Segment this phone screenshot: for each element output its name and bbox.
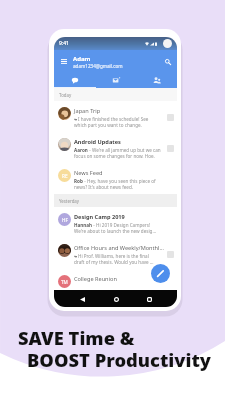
staticText: Today (59, 92, 72, 98)
staticText: Adam (73, 55, 91, 63)
button[interactable]: Japan Trip (54, 101, 177, 132)
staticText: Office Hours and Weekly/Monthly Me... (74, 244, 165, 252)
staticText: draft of my thesis. Would you have ... (74, 259, 154, 265)
staticText: HF (62, 217, 68, 223)
staticText: Hi 2019 Design Campers! (96, 222, 151, 228)
staticText: - (83, 178, 87, 184)
staticText: Android Updates (74, 138, 121, 146)
button[interactable]: TM (54, 269, 177, 290)
button[interactable]: Home (110, 293, 122, 305)
staticText: Design Camp 2019 (74, 213, 125, 221)
staticText: Hey, have you seen this piece of (87, 178, 156, 184)
staticText: - (92, 222, 96, 228)
staticText: focus on some changes for now. Hoe. (74, 153, 155, 159)
staticText: We're all jammed up but we can (92, 147, 161, 153)
staticText: RE (62, 173, 68, 179)
staticText: - (88, 147, 92, 153)
staticText: TM (61, 279, 68, 285)
button[interactable]: RE (54, 163, 177, 194)
button[interactable]: Chats (54, 73, 95, 88)
staticText: news? It's about news feed. (74, 184, 133, 190)
staticText: Japan Trip (74, 107, 101, 115)
staticText: Hannah (74, 222, 92, 228)
staticText: which part you want to change. (74, 122, 142, 128)
button[interactable]: Recent apps (143, 293, 155, 305)
button[interactable]: Android Updates (54, 132, 177, 163)
button[interactable]: Compose new message (151, 264, 170, 283)
button[interactable]: Contacts (136, 73, 177, 88)
staticText: Yesterday (59, 198, 80, 204)
staticText: College Reunion (74, 275, 117, 283)
button[interactable]: Office Hours and Weekly/Monthly Me... (54, 238, 177, 269)
button[interactable]: Open navigation menu (58, 56, 69, 67)
staticText: I have finished the schedule! See (78, 116, 149, 122)
button[interactable]: Back (76, 293, 88, 305)
staticText: Hi Prof. Williams, here is the final (78, 253, 149, 259)
staticText: SAVE Time & (18, 325, 135, 350)
staticText: Aaron (74, 147, 88, 153)
button[interactable]: Mail (95, 73, 136, 88)
staticText: BOOST Productivity (27, 347, 212, 372)
staticText: adam1234@gmail.com (73, 63, 123, 69)
staticText: We're about to launch the new desig... (74, 228, 157, 234)
button[interactable]: HF (54, 207, 177, 238)
staticText: Rob (74, 178, 83, 184)
staticText: News Feed (74, 169, 103, 177)
button[interactable]: Search (162, 56, 173, 67)
staticText: 9:41 (59, 40, 69, 47)
